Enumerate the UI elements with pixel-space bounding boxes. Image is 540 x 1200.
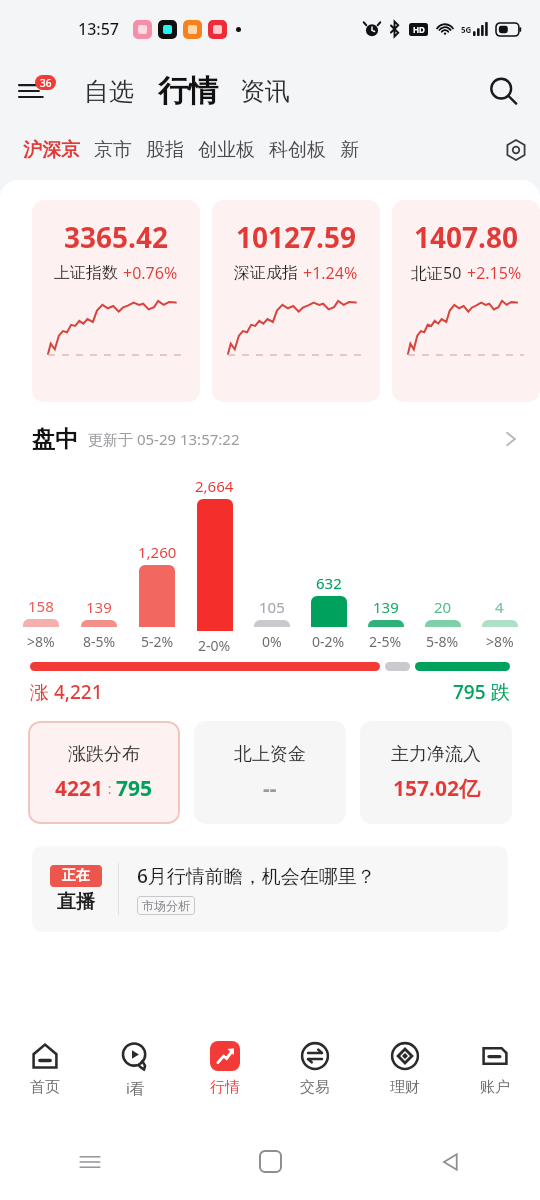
button[interactable]: 交易: [270, 1023, 360, 1123]
button[interactable]: Home: [180, 1123, 360, 1200]
staticText: 行情: [210, 1078, 240, 1097]
button[interactable]: 1407.80: [392, 200, 540, 402]
button[interactable]: 理财: [360, 1023, 450, 1123]
staticText: 0%: [262, 632, 282, 651]
staticText: HD: [413, 24, 425, 35]
staticText: 4: [495, 597, 504, 617]
staticText: 账户: [480, 1078, 510, 1097]
staticText: 北上资金: [234, 743, 306, 766]
button[interactable]: 正在: [32, 846, 508, 932]
button[interactable]: 科创板: [262, 132, 333, 168]
button[interactable]: 涨跌分布: [28, 721, 180, 824]
staticText: 632: [316, 573, 342, 593]
button[interactable]: 自选: [82, 70, 136, 113]
button[interactable]: Search: [480, 68, 526, 114]
staticText: 京市: [94, 138, 132, 162]
staticText: 139: [86, 597, 112, 617]
button[interactable]: 股指: [139, 132, 191, 168]
staticText: 创业板: [198, 138, 255, 162]
staticText: +0.76%: [123, 262, 178, 284]
button[interactable]: 盘中: [0, 416, 540, 462]
staticText: 13:57: [78, 18, 119, 40]
staticText: 直播: [57, 890, 95, 914]
staticText: 105: [259, 597, 285, 617]
staticText: 盘中: [32, 425, 78, 454]
staticText: i看: [126, 1078, 145, 1098]
staticText: 更新于 05-29 13:57:22: [88, 429, 240, 449]
staticText: 2-0%: [198, 636, 231, 651]
staticText: 3365.42: [32, 218, 200, 256]
staticText: 795 跌: [453, 679, 510, 705]
staticText: 理财: [390, 1078, 420, 1097]
staticText: 市场分析: [142, 898, 190, 913]
staticText: 157.02亿: [393, 774, 480, 803]
button[interactable]: 账户: [450, 1023, 540, 1123]
staticText: 5-8%: [426, 632, 459, 651]
staticText: 涨跌分布: [68, 743, 140, 766]
staticText: 科创板: [269, 138, 326, 162]
button[interactable]: 沪深京: [16, 132, 87, 168]
staticText: :: [104, 779, 116, 798]
button[interactable]: 行情: [180, 1023, 270, 1123]
staticText: 4221: [55, 774, 104, 803]
staticText: 正在: [62, 867, 90, 885]
button[interactable]: 资讯: [238, 70, 292, 113]
button[interactable]: 3365.42: [32, 200, 200, 402]
staticText: 1407.80: [392, 218, 540, 256]
button[interactable]: i看: [90, 1023, 180, 1123]
staticText: 股指: [146, 138, 184, 162]
staticText: 10127.59: [212, 218, 380, 256]
staticText: 涨 4,221: [30, 679, 103, 705]
staticText: 北证50: [411, 262, 462, 284]
staticText: 沪深京: [23, 138, 80, 162]
staticText: 2-5%: [369, 632, 402, 651]
button[interactable]: Back: [360, 1123, 540, 1200]
staticText: 深证成指: [234, 263, 298, 283]
button[interactable]: 主力净流入: [360, 721, 512, 824]
staticText: --: [263, 774, 277, 803]
button[interactable]: 新: [333, 132, 366, 168]
staticText: +2.15%: [467, 262, 522, 284]
staticText: 139: [373, 597, 399, 617]
staticText: 8-5%: [83, 632, 116, 651]
staticText: 795: [116, 774, 153, 803]
staticText: 行情: [158, 72, 218, 110]
staticText: 5G: [461, 24, 472, 35]
staticText: 2,664: [195, 476, 234, 496]
button[interactable]: Menu, 36 notifications: [18, 70, 60, 112]
staticText: 上证指数: [54, 263, 118, 283]
staticText: 0-2%: [312, 632, 345, 651]
staticText: 资讯: [240, 76, 290, 107]
staticText: 自选: [84, 76, 134, 107]
staticText: 主力净流入: [391, 743, 481, 766]
staticText: 首页: [30, 1078, 60, 1097]
staticText: 交易: [300, 1078, 330, 1097]
button[interactable]: 京市: [87, 132, 139, 168]
button[interactable]: 行情: [156, 68, 220, 114]
staticText: 5-2%: [141, 632, 174, 651]
staticText: 新: [340, 138, 359, 162]
button[interactable]: Recent apps: [0, 1123, 180, 1200]
staticText: 158: [28, 596, 54, 616]
staticText: >8%: [27, 632, 55, 651]
staticText: 6月行情前瞻，机会在哪里？: [137, 863, 376, 889]
button[interactable]: 10127.59: [212, 200, 380, 402]
button[interactable]: 首页: [0, 1023, 90, 1123]
staticText: >8%: [486, 632, 514, 651]
button[interactable]: Filter settings: [494, 128, 538, 172]
staticText: 1,260: [138, 542, 177, 562]
staticText: 20: [434, 597, 452, 617]
staticText: 36: [40, 76, 52, 90]
button[interactable]: 创业板: [191, 132, 262, 168]
staticText: +1.24%: [303, 262, 358, 284]
button[interactable]: 北上资金: [194, 721, 346, 824]
